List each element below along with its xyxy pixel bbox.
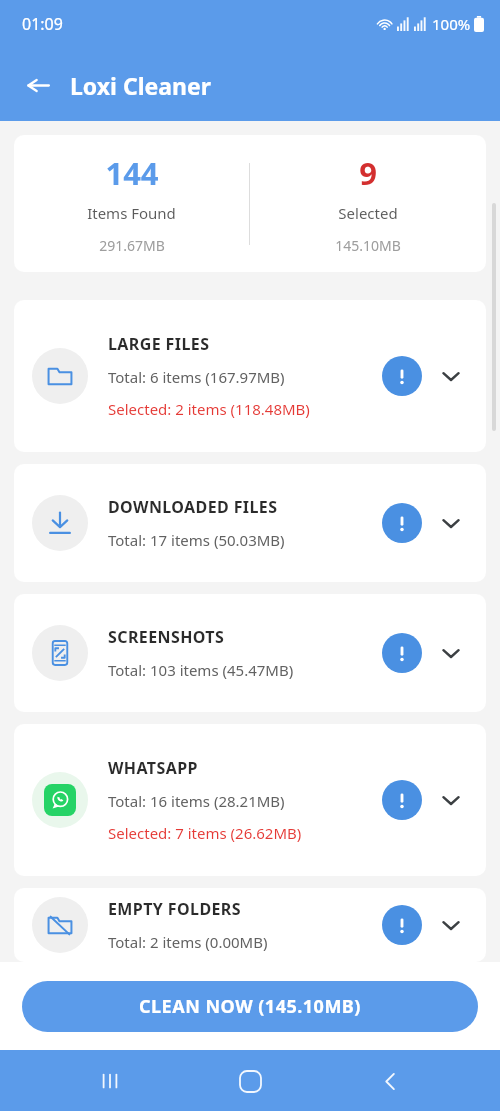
button[interactable]: Info [382, 633, 422, 673]
button[interactable]: Expand [434, 359, 468, 393]
button[interactable]: Back [360, 1051, 420, 1111]
staticText: Loxi Cleaner [70, 70, 212, 101]
button[interactable]: EMPTY FOLDERS [14, 888, 486, 962]
staticText: SCREENSHOTS [108, 626, 225, 648]
staticText: Total: 103 items (45.47MB) [108, 660, 294, 680]
staticText: Selected: 7 items (26.62MB) [108, 823, 302, 843]
staticText: EMPTY FOLDERS [108, 898, 241, 920]
staticText: 100% [432, 14, 471, 34]
staticText: 144 [105, 152, 159, 194]
staticText: 145.10MB [335, 236, 401, 255]
staticText: 01:09 [22, 13, 63, 35]
button[interactable]: CLEAN NOW (145.10MB) [22, 981, 478, 1032]
staticText: Total: 6 items (167.97MB) [108, 367, 285, 387]
button[interactable]: Info [382, 503, 422, 543]
button[interactable]: DOWNLOADED FILES [14, 464, 486, 582]
button[interactable]: Expand [434, 506, 468, 540]
button[interactable]: Info [382, 780, 422, 820]
button[interactable]: Recents [80, 1051, 140, 1111]
staticText: Total: 17 items (50.03MB) [108, 530, 285, 550]
button[interactable]: LARGE FILES [14, 300, 486, 452]
button[interactable]: Info [382, 905, 422, 945]
staticText: Items Found [87, 203, 176, 223]
button[interactable]: Expand [434, 908, 468, 942]
staticText: Selected [338, 203, 398, 223]
button[interactable]: Info [382, 356, 422, 396]
staticText: Total: 2 items (0.00MB) [108, 932, 268, 952]
button[interactable]: WHATSAPP [14, 724, 486, 876]
staticText: LARGE FILES [108, 333, 210, 355]
staticText: Total: 16 items (28.21MB) [108, 791, 285, 811]
button[interactable]: SCREENSHOTS [14, 594, 486, 712]
button[interactable]: Home [220, 1051, 280, 1111]
staticText: DOWNLOADED FILES [108, 496, 278, 518]
button[interactable]: Expand [434, 636, 468, 670]
staticText: 9 [359, 152, 377, 194]
button[interactable]: Expand [434, 783, 468, 817]
button[interactable]: Back [16, 63, 60, 107]
staticText: CLEAN NOW (145.10MB) [139, 994, 361, 1019]
staticText: 291.67MB [99, 236, 165, 255]
staticText: WHATSAPP [108, 757, 198, 779]
staticText: Selected: 2 items (118.48MB) [108, 399, 310, 419]
button[interactable]: 144 [14, 135, 486, 272]
